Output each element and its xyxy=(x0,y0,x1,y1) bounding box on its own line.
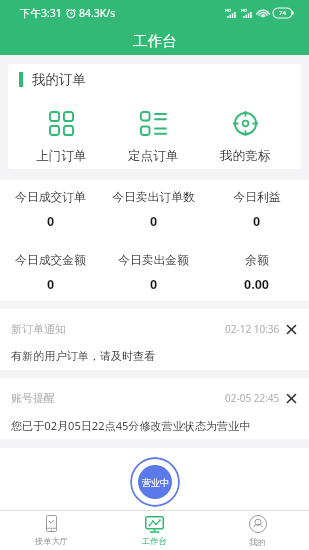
staticText: 0 xyxy=(253,213,261,230)
button[interactable]: 工作台 xyxy=(103,511,206,550)
staticText: 今日卖出订单数 xyxy=(112,190,195,205)
staticText: 84.3K/s xyxy=(79,6,116,20)
staticText: 上门订单 xyxy=(36,148,87,164)
button[interactable]: 上门订单 xyxy=(15,110,107,165)
staticText: 有新的用户订单，请及时查看 xyxy=(11,349,156,363)
staticText: 今日成交订单 xyxy=(15,190,86,205)
staticText: 0 xyxy=(150,213,158,230)
staticText: 我的 xyxy=(249,537,266,547)
staticText: 定点订单 xyxy=(128,148,179,164)
staticText: 74 xyxy=(279,9,286,17)
staticText: 今日成交金额 xyxy=(15,253,86,268)
staticText: 您已于02月05日22点45分修改营业状态为营业中 xyxy=(11,418,251,433)
staticText: 下午3:31 xyxy=(20,6,62,20)
staticText: 我的订单 xyxy=(32,71,86,88)
staticText: 我的竞标 xyxy=(220,148,271,164)
staticText: 工作台 xyxy=(133,32,177,50)
button[interactable]: 定点订单 xyxy=(107,110,199,165)
button[interactable]: 关闭 xyxy=(286,324,297,335)
staticText: 新订单通知 xyxy=(11,322,66,336)
staticText: 02-05 22:45 xyxy=(225,391,280,405)
staticText: 0.00 xyxy=(244,276,269,293)
staticText: 营业中 xyxy=(142,477,169,488)
button[interactable]: 关闭 xyxy=(286,393,297,404)
button[interactable]: 新订单通知 xyxy=(0,309,309,370)
staticText: 02-12 10:36 xyxy=(225,322,280,336)
button[interactable]: 我的竞标 xyxy=(199,110,291,165)
staticText: 工作台 xyxy=(142,536,167,546)
staticText: 接单大厅 xyxy=(35,536,68,546)
button[interactable]: 我的 xyxy=(206,511,309,550)
staticText: 今日卖出金额 xyxy=(118,253,189,268)
button[interactable]: 账号提醒 xyxy=(0,378,309,439)
staticText: 账号提醒 xyxy=(11,391,55,405)
button[interactable]: 营业中 xyxy=(130,457,180,507)
staticText: 0 xyxy=(47,213,55,230)
staticText: 今日利益 xyxy=(233,190,281,205)
staticText: 余额 xyxy=(245,253,269,268)
button[interactable]: 接单大厅 xyxy=(0,511,103,550)
staticText: 0 xyxy=(150,276,158,293)
staticText: 0 xyxy=(47,276,55,293)
